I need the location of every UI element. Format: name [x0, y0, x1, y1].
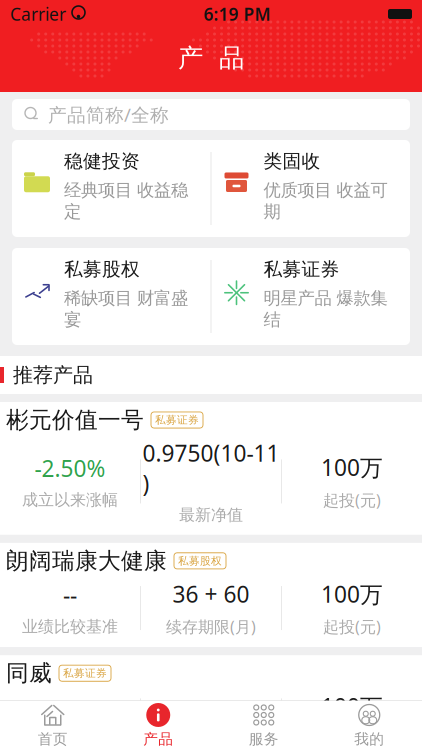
- staticText: 彬元价值一号: [6, 406, 144, 434]
- staticText: 私募证券: [63, 667, 107, 680]
- button[interactable]: 彬元价值一号: [0, 402, 422, 535]
- staticText: 最新净值: [179, 505, 243, 525]
- staticText: 续存期限(月): [166, 616, 256, 637]
- staticText: 产 品: [178, 42, 244, 73]
- staticText: 成立以来涨幅: [22, 490, 118, 510]
- staticText: 经典项目 收益稳定: [64, 180, 188, 222]
- staticText: 推荐产品: [13, 363, 93, 387]
- staticText: 优质项目 收益可期: [263, 180, 387, 222]
- staticText: --: [63, 692, 77, 722]
- staticText: 100万: [321, 691, 383, 721]
- staticText: 首页: [38, 730, 68, 748]
- staticText: 私募证券: [263, 258, 339, 281]
- button[interactable]: 私募证券: [211, 246, 410, 347]
- staticText: 100万: [321, 579, 383, 609]
- staticText: 私募证券: [155, 413, 199, 426]
- staticText: 同威: [6, 659, 52, 687]
- staticText: 起投(元): [323, 489, 381, 511]
- staticText: Carrier: [10, 2, 66, 25]
- staticText: 产品简称/全称: [48, 102, 169, 127]
- button[interactable]: 朗阔瑞康大健康: [0, 543, 422, 647]
- staticText: 起投(元): [323, 616, 381, 637]
- staticText: 私募股权: [64, 258, 140, 281]
- button[interactable]: 稳健投资: [12, 138, 210, 239]
- button[interactable]: 产品: [105, 701, 211, 750]
- staticText: 朗阔瑞康大健康: [6, 547, 167, 575]
- staticText: 类固收: [263, 150, 320, 173]
- staticText: 明星产品 爆款集结: [263, 288, 387, 330]
- staticText: --: [204, 692, 218, 722]
- button[interactable]: 私募股权: [12, 246, 210, 347]
- staticText: 36 + 60: [172, 579, 249, 609]
- staticText: --: [63, 580, 77, 610]
- staticText: 产品: [143, 730, 173, 748]
- staticText: 稀缺项目 财富盛宴: [64, 288, 188, 330]
- staticText: 稳健投资: [64, 150, 140, 173]
- button[interactable]: 类固收: [211, 138, 410, 239]
- staticText: 起投(元): [323, 728, 381, 749]
- staticText: 100万: [321, 452, 383, 482]
- staticText: 我的: [354, 730, 384, 748]
- button[interactable]: 我的: [316, 701, 422, 750]
- staticText: -2.50%: [34, 453, 105, 483]
- button[interactable]: 同威: [0, 655, 422, 750]
- button[interactable]: 首页: [0, 701, 105, 750]
- staticText: 私募股权: [178, 554, 222, 567]
- staticText: 业绩比较基准: [22, 617, 118, 636]
- staticText: 成立以来涨幅: [22, 729, 118, 749]
- staticText: 服务: [249, 730, 279, 748]
- button[interactable]: 服务: [211, 701, 316, 750]
- staticText: 6:19 PM: [203, 2, 270, 25]
- staticText: 0.9750(10-11): [142, 438, 279, 498]
- button[interactable]: 搜索产品: [12, 99, 410, 130]
